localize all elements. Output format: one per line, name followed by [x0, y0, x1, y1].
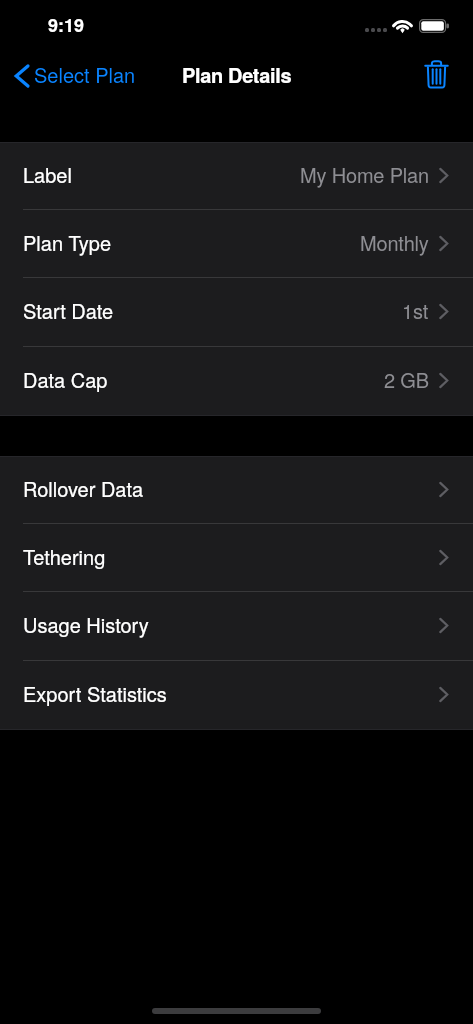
button[interactable]: Rollover Data	[0, 456, 473, 524]
staticText: Monthly	[360, 228, 429, 257]
staticText: Export Statistics	[23, 679, 167, 708]
button[interactable]: Plan Type	[0, 210, 473, 278]
staticText: Data Cap	[23, 365, 108, 394]
staticText: Usage History	[23, 610, 149, 639]
staticText: Label	[23, 160, 72, 189]
staticText: 1st	[402, 296, 429, 325]
staticText: Select Plan	[34, 60, 136, 89]
staticText: Plan Type	[23, 228, 112, 257]
button[interactable]: Delete plan	[407, 60, 473, 88]
staticText: Rollover Data	[23, 474, 144, 503]
staticText: Start Date	[23, 296, 114, 325]
staticText: 2 GB	[384, 365, 429, 394]
button[interactable]: Select Plan	[0, 60, 144, 89]
staticText: My Home Plan	[300, 160, 429, 189]
button[interactable]: Label	[0, 142, 473, 210]
button[interactable]: Tethering	[0, 524, 473, 592]
button[interactable]: Usage History	[0, 592, 473, 661]
staticText: 9:19	[48, 12, 85, 38]
button[interactable]: Start Date	[0, 278, 473, 347]
staticText: Tethering	[23, 542, 106, 571]
staticText: Plan Details	[182, 60, 292, 89]
button[interactable]: Data Cap	[0, 347, 473, 416]
button[interactable]: Export Statistics	[0, 661, 473, 730]
